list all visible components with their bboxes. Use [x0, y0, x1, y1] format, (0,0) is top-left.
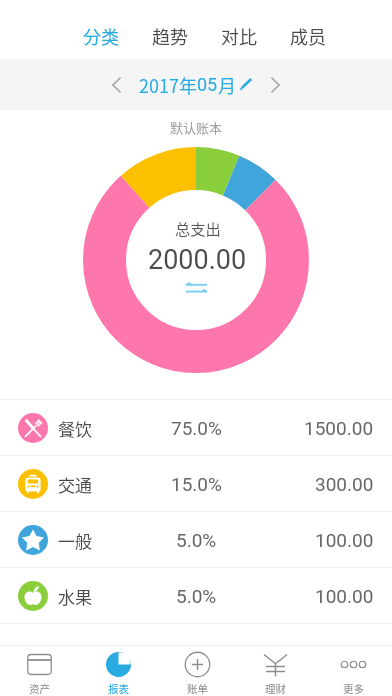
staticText: 默认账本: [170, 118, 223, 137]
staticText: 餐饮: [58, 416, 92, 441]
button[interactable]: 报表: [79, 646, 158, 696]
staticText: 理财: [265, 681, 286, 696]
staticText: 100.00: [315, 529, 374, 551]
staticText: 100.00: [315, 585, 374, 607]
staticText: 报表: [108, 681, 129, 696]
staticText: 05: [197, 74, 218, 95]
staticText: 账单: [187, 681, 208, 696]
staticText: 5.0%: [176, 585, 217, 607]
staticText: 2000.00: [148, 244, 247, 276]
button[interactable]: 趋势: [135, 13, 204, 59]
button[interactable]: 交通: [0, 456, 392, 511]
staticText: 水果: [58, 584, 92, 609]
button[interactable]: 理财: [236, 646, 314, 696]
staticText: 资产: [29, 681, 50, 696]
button[interactable]: 成员: [273, 13, 342, 59]
button[interactable]: Next month: [259, 69, 291, 101]
staticText: 2017年: [139, 72, 197, 98]
button[interactable]: 一般: [0, 512, 392, 567]
staticText: 15.0%: [171, 473, 222, 495]
button[interactable]: 账单: [158, 646, 236, 696]
button[interactable]: 资产: [0, 646, 79, 696]
button[interactable]: 对比: [204, 13, 273, 59]
staticText: 一般: [58, 528, 92, 553]
button[interactable]: Previous month: [100, 69, 132, 101]
staticText: 更多: [343, 681, 364, 696]
button[interactable]: 分类: [66, 13, 135, 59]
staticText: 5.0%: [176, 529, 217, 551]
staticText: 成员: [290, 23, 326, 49]
staticText: 300.00: [315, 473, 374, 495]
staticText: 月: [218, 72, 236, 98]
staticText: 75.0%: [171, 417, 222, 439]
button[interactable]: Edit: [230, 69, 260, 99]
button[interactable]: 更多: [314, 646, 392, 696]
staticText: 趋势: [152, 23, 188, 49]
staticText: 总支出: [175, 217, 221, 239]
staticText: 交通: [58, 472, 92, 497]
staticText: 分类: [83, 23, 119, 49]
staticText: 1500.00: [304, 417, 374, 439]
button[interactable]: 餐饮: [0, 400, 392, 455]
button[interactable]: 水果: [0, 568, 392, 623]
staticText: 对比: [221, 23, 257, 49]
